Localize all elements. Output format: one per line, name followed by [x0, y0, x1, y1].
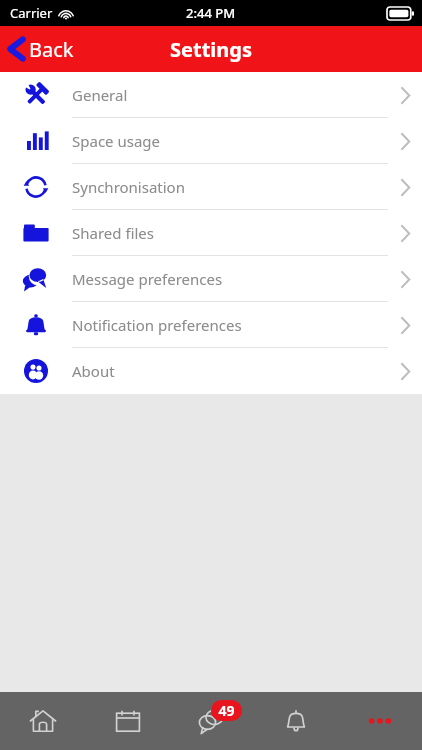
button[interactable]: Notification preferences: [0, 302, 422, 348]
staticText: Notification preferences: [72, 315, 242, 335]
button[interactable]: Space usage: [0, 118, 422, 164]
staticText: Synchronisation: [72, 177, 185, 197]
staticText: Back: [29, 36, 74, 63]
button[interactable]: About: [0, 348, 422, 394]
button[interactable]: Shared files: [0, 210, 422, 256]
button[interactable]: Message preferences: [0, 256, 422, 302]
button[interactable]: General: [0, 72, 422, 118]
button[interactable]: Calendar: [85, 692, 170, 750]
staticText: Shared files: [72, 223, 154, 243]
button[interactable]: Home: [0, 692, 85, 750]
staticText: Carrier: [10, 4, 53, 22]
button[interactable]: Messages, 49 unread: [170, 692, 254, 750]
staticText: About: [72, 361, 115, 381]
staticText: General: [72, 85, 128, 105]
staticText: 2:44 PM: [186, 4, 236, 22]
staticText: Space usage: [72, 131, 160, 151]
staticText: Message preferences: [72, 269, 223, 289]
staticText: Settings: [170, 36, 252, 63]
button[interactable]: Back: [0, 26, 86, 72]
staticText: 49: [218, 701, 235, 720]
button[interactable]: More: [338, 692, 422, 750]
button[interactable]: Synchronisation: [0, 164, 422, 210]
button[interactable]: Notifications: [254, 692, 338, 750]
